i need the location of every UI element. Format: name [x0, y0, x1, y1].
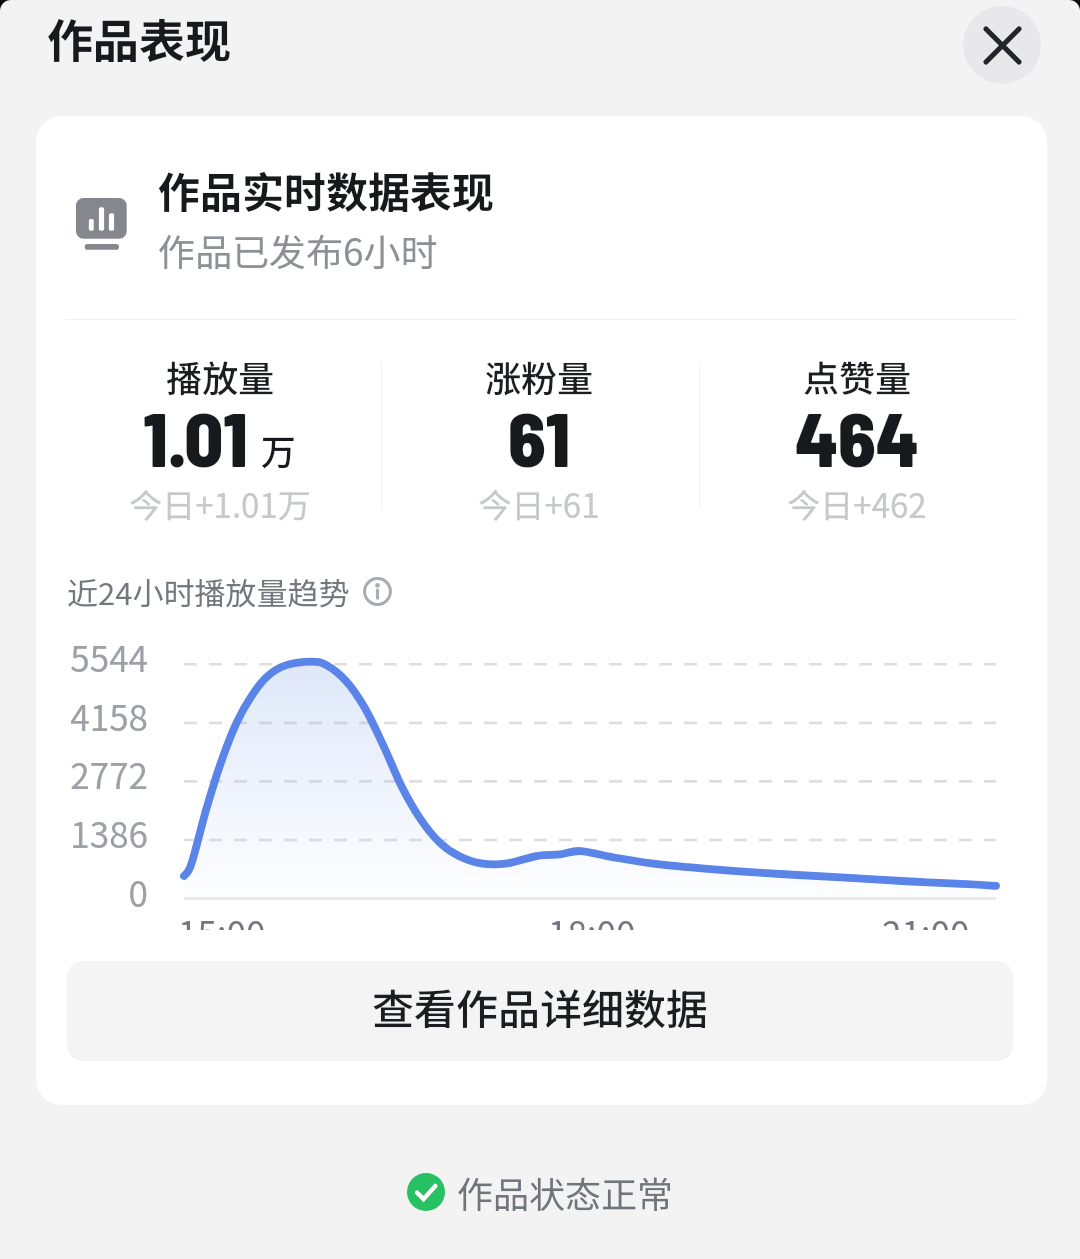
- staticText: 近24小时播放量趋势: [67, 569, 350, 614]
- staticText: 作品表现: [47, 5, 231, 72]
- staticText: 点赞量: [677, 350, 1037, 402]
- staticText: 作品已发布6小时: [158, 223, 438, 277]
- staticText: 万: [261, 424, 297, 475]
- staticText: 涨粉量: [359, 350, 719, 402]
- staticText: 作品状态正常: [457, 1166, 674, 1218]
- staticText: 0: [36, 866, 148, 917]
- staticText: 21:00: [882, 906, 970, 930]
- staticText: 播放量: [40, 350, 400, 402]
- staticText: 464: [795, 391, 919, 482]
- button[interactable]: Close: [963, 6, 1041, 84]
- staticText: 61: [508, 391, 571, 482]
- staticText: 今日+1.01万: [40, 480, 400, 528]
- staticText: 查看作品详细数据: [372, 976, 709, 1037]
- button[interactable]: 查看作品详细数据: [67, 961, 1013, 1061]
- staticText: 1.01: [143, 391, 248, 482]
- staticText: 1386: [36, 807, 148, 858]
- staticText: 今日+61: [359, 480, 719, 528]
- staticText: 2772: [36, 748, 148, 799]
- staticText: 作品实时数据表现: [158, 159, 495, 220]
- staticText: 15:00: [178, 906, 266, 930]
- staticText: 5544: [36, 631, 148, 682]
- staticText: 今日+462: [677, 480, 1037, 528]
- staticText: 4158: [36, 690, 148, 741]
- staticText: 18:00: [548, 906, 636, 930]
